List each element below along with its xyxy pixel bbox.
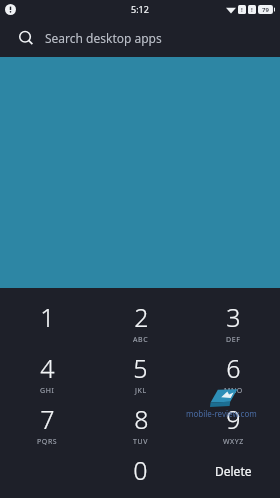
staticText: 6 <box>226 351 241 385</box>
staticText: Delete <box>215 463 252 479</box>
staticText: JKL <box>135 386 147 396</box>
staticText: 9 <box>226 402 241 436</box>
staticText: 8 <box>134 402 149 436</box>
button[interactable]: 2 <box>94 300 187 351</box>
staticText: 1 <box>40 300 55 334</box>
staticText: Search desktop apps <box>45 30 162 46</box>
staticText: 4 <box>40 351 55 385</box>
staticText: 5:12 <box>131 3 149 15</box>
staticText: ! <box>251 6 253 14</box>
staticText: TUV <box>133 437 149 447</box>
button[interactable]: 1 <box>0 300 94 351</box>
button[interactable]: Search desktop apps <box>0 18 280 57</box>
staticText: 0 <box>133 453 148 487</box>
staticText: ! <box>241 6 243 14</box>
button[interactable]: 5 <box>94 351 187 402</box>
staticText: 7 <box>40 402 55 436</box>
staticText: 5 <box>133 351 148 385</box>
staticText: DEF <box>226 335 241 345</box>
button[interactable]: Delete <box>187 453 280 498</box>
button[interactable]: 9 <box>187 402 280 453</box>
staticText: 79 <box>262 6 269 14</box>
staticText: GHI <box>40 386 55 396</box>
button[interactable]: 7 <box>0 402 94 453</box>
staticText: 3 <box>226 300 241 334</box>
staticText: WXYZ <box>223 437 244 447</box>
staticText: ABC <box>133 335 149 345</box>
button[interactable]: 0 <box>94 453 187 498</box>
staticText: PQRS <box>37 437 58 447</box>
staticText: mobile-review.com <box>186 408 257 419</box>
button[interactable]: 4 <box>0 351 94 402</box>
button[interactable]: 3 <box>187 300 280 351</box>
button[interactable]: 8 <box>94 402 187 453</box>
staticText: 2 <box>134 300 149 334</box>
button[interactable]: 6 <box>187 351 280 402</box>
staticText: MNO <box>224 386 243 396</box>
